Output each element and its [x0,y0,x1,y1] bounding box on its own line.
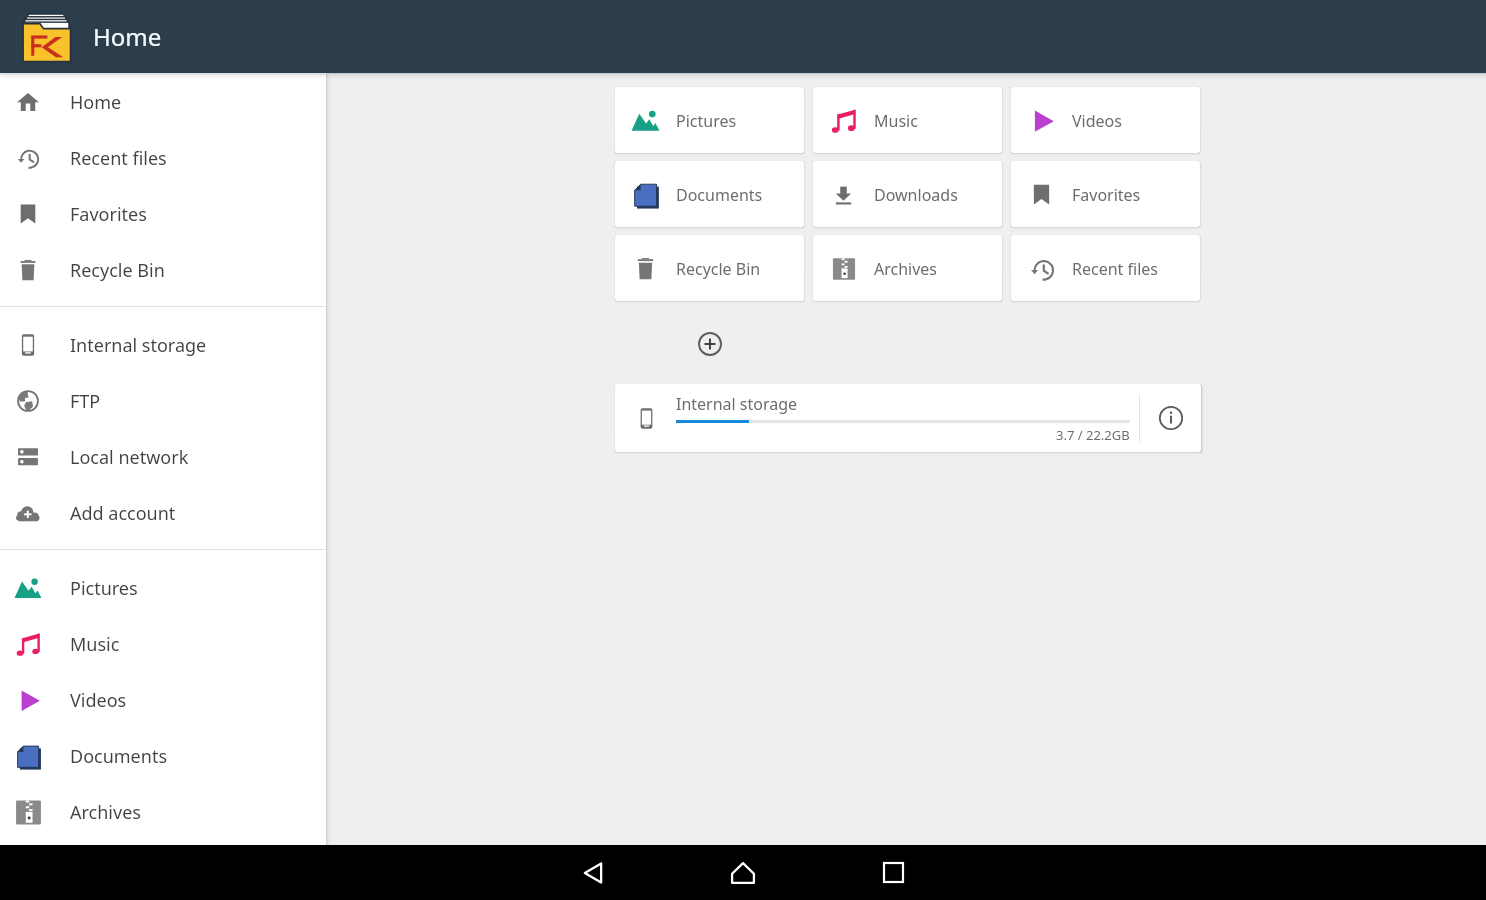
button[interactable]: Videos [0,672,326,728]
button[interactable]: Music [0,616,326,672]
staticText: Videos [1072,110,1122,132]
staticText: Recent files [1072,258,1158,280]
staticText: Recycle Bin [676,258,761,280]
button[interactable]: Documents [615,161,804,227]
button[interactable]: Archives [813,235,1002,301]
button[interactable]: Internal storage [0,317,326,373]
staticText: Internal storage [676,393,798,415]
staticText: Music [70,632,120,657]
staticText: Recycle Bin [70,258,165,283]
staticText: Pictures [676,110,737,132]
button[interactable]: Pictures [615,87,804,153]
button[interactable]: Recent files [1011,235,1200,301]
button[interactable]: Home [0,74,326,130]
staticText: Downloads [874,184,958,206]
button[interactable]: Recycle Bin [615,235,804,301]
staticText: Favorites [1072,184,1141,206]
staticText: Home [70,90,122,115]
button[interactable]: Videos [1011,87,1200,153]
button[interactable]: Music [813,87,1002,153]
staticText: Favorites [70,202,147,227]
button[interactable]: Recent files [0,130,326,186]
button[interactable]: Recycle Bin [0,242,326,298]
button[interactable]: Info [1140,384,1201,452]
staticText: Videos [70,688,127,713]
button[interactable]: Add account [0,485,326,541]
staticText: Add account [70,501,176,526]
staticText: Documents [676,184,763,206]
staticText: Internal storage [70,333,207,358]
button[interactable]: Open navigation drawer [19,10,73,64]
button[interactable]: Add [695,329,725,359]
staticText: Pictures [70,576,138,601]
button[interactable]: Recents [863,845,923,900]
staticText: Recent files [70,146,167,171]
staticText: FTP [70,389,101,414]
button[interactable]: Archives [0,784,326,840]
button[interactable]: Local network [0,429,326,485]
staticText: Home [93,20,162,53]
button[interactable]: Documents [0,728,326,784]
button[interactable]: Internal storage [615,384,1201,452]
staticText: Documents [70,744,168,769]
button[interactable]: Downloads [813,161,1002,227]
button[interactable]: Pictures [0,560,326,616]
button[interactable]: Favorites [0,186,326,242]
staticText: Archives [874,258,938,280]
button[interactable]: Home [713,845,773,900]
button[interactable]: FTP [0,373,326,429]
staticText: Local network [70,445,189,470]
button[interactable]: Favorites [1011,161,1200,227]
staticText: Music [874,110,918,132]
button[interactable]: Back [563,845,623,900]
staticText: Archives [70,800,141,825]
staticText: 3.7 / 22.2GB [1056,426,1130,444]
